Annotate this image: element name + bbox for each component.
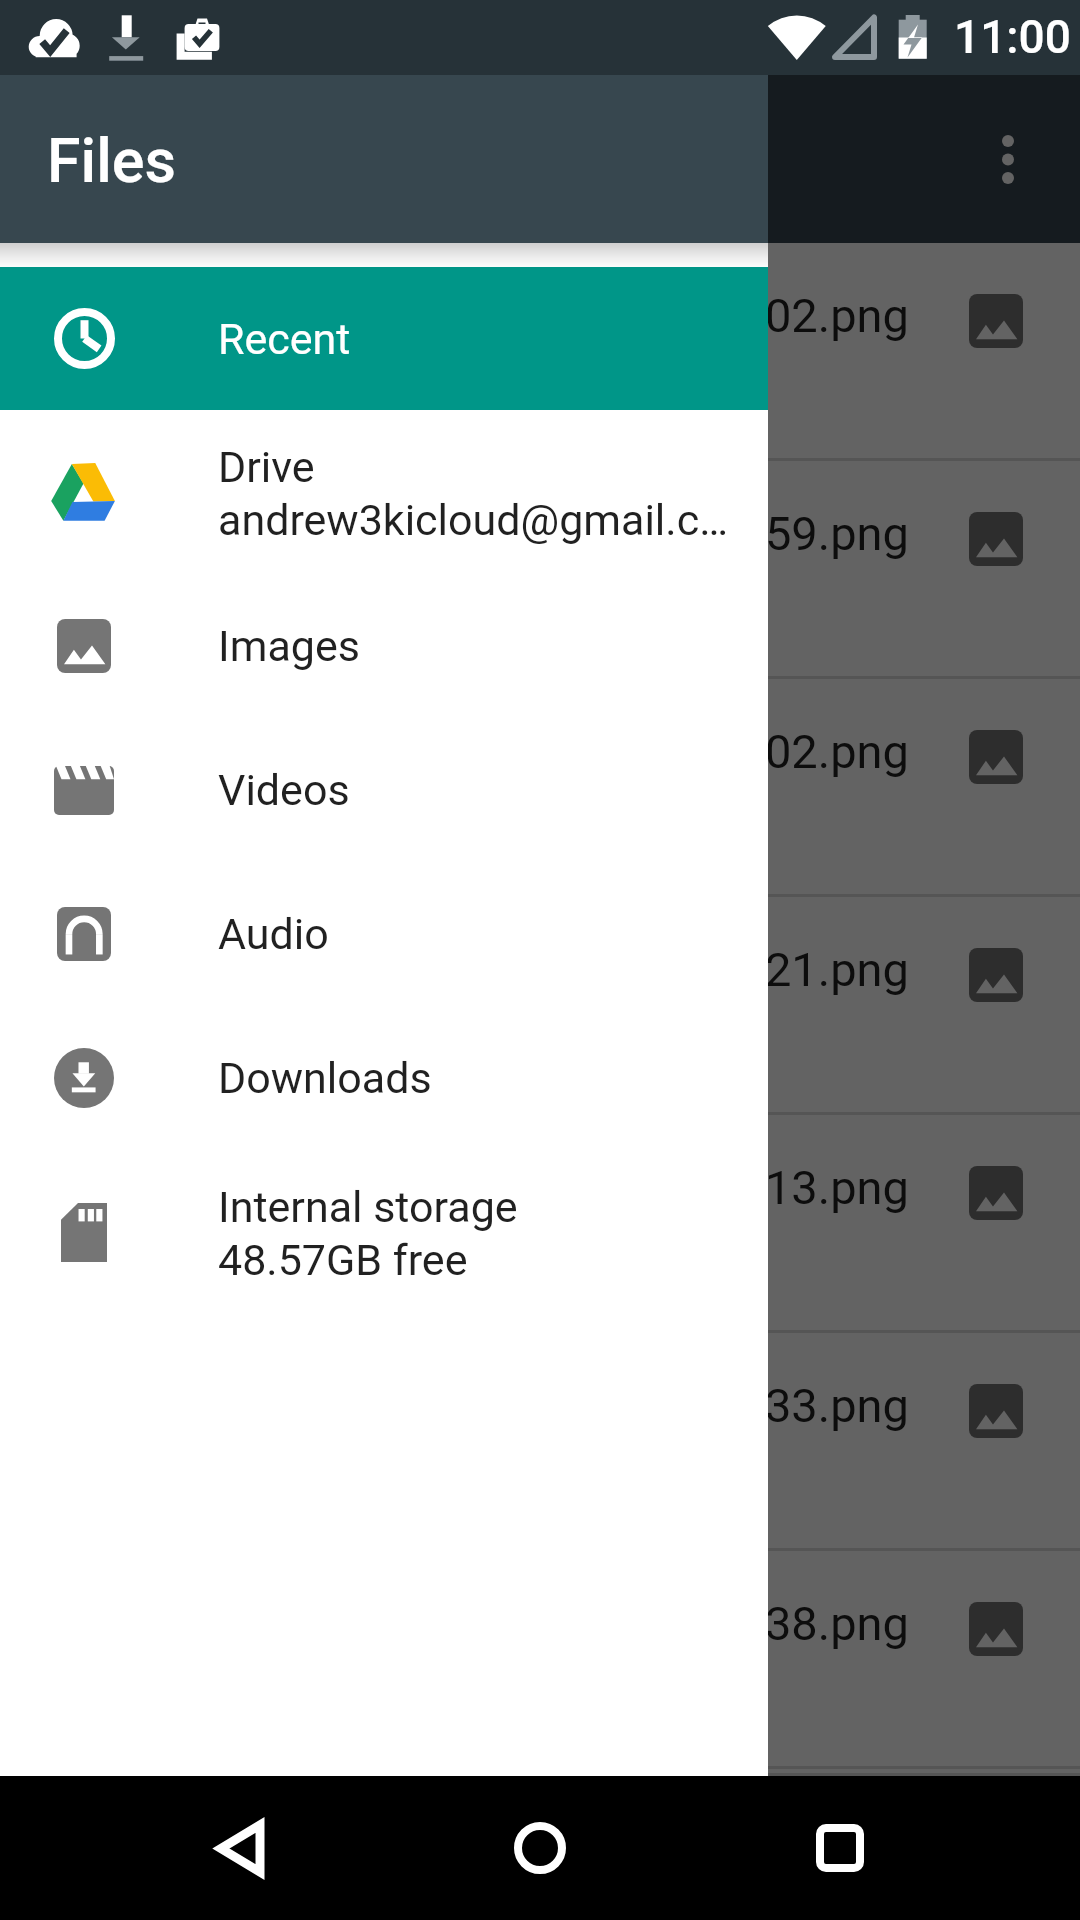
button[interactable]: Videos bbox=[0, 718, 768, 862]
button[interactable]: Screenshotsi_2016-05-01-10-54-38.png bbox=[0, 1551, 1080, 1769]
staticText: Internal storage bbox=[218, 1182, 518, 1232]
staticText: Screenshotsi_2016-05-01-10-55-33.png bbox=[90, 1378, 969, 1433]
button[interactable]: Screenshotsi_2016-05-01-10-58-02.png bbox=[0, 679, 1080, 897]
button[interactable]: Audio bbox=[0, 862, 768, 1006]
staticText: Screenshotsi_2016-05-01-10-54-38.png bbox=[90, 1596, 969, 1651]
button[interactable]: Home bbox=[480, 1788, 600, 1908]
staticText: Downloads bbox=[218, 1053, 432, 1103]
button[interactable]: Drive bbox=[0, 410, 768, 574]
staticText: Recent bbox=[218, 314, 351, 364]
staticText: Drive bbox=[218, 442, 315, 492]
staticText: Screenshotsi_2016-05-01-10-58-02.png bbox=[90, 724, 969, 779]
staticText: Files bbox=[47, 125, 176, 196]
staticText: Screenshotsi_2016-05-01-10-57-21.png bbox=[90, 942, 969, 997]
staticText: 48.57GB free bbox=[218, 1235, 468, 1285]
staticText: andrew3kicloud@gmail.c… bbox=[218, 495, 728, 545]
button[interactable]: Recent bbox=[0, 267, 768, 410]
button[interactable]: Screenshotsi_2016-05-01-10-57-21.png bbox=[0, 897, 1080, 1115]
staticText: Audio bbox=[218, 909, 329, 959]
button[interactable]: Images bbox=[0, 574, 768, 718]
staticText: 11:00 bbox=[954, 10, 1071, 64]
button[interactable]: Screenshotsi_2016-05-01-10-56-13.png bbox=[0, 1115, 1080, 1333]
button[interactable]: Screenshotsi_2016-05-01-11-00-02.png bbox=[0, 243, 1080, 461]
button[interactable]: More options bbox=[936, 75, 1080, 243]
staticText: Files bbox=[47, 125, 176, 196]
button[interactable]: Downloads bbox=[0, 1006, 768, 1150]
button[interactable]: Screenshotsi_2016-05-01-10-53-11.png bbox=[0, 1769, 1080, 1776]
staticText: Screenshotsi_2016-05-01-10-56-13.png bbox=[90, 1160, 969, 1215]
staticText: Videos bbox=[218, 765, 350, 815]
staticText: Images bbox=[218, 621, 360, 671]
staticText: Screenshotsi_2016-05-01-11-00-02.png bbox=[90, 288, 969, 343]
button[interactable]: Screenshotsi_2016-05-01-10-55-33.png bbox=[0, 1333, 1080, 1551]
button[interactable]: Internal storage bbox=[0, 1150, 768, 1314]
button[interactable]: Back bbox=[180, 1788, 300, 1908]
button[interactable]: Screenshotsi_2016-05-01-10-59-59.png bbox=[0, 461, 1080, 679]
button[interactable]: Recent apps bbox=[780, 1788, 900, 1908]
staticText: Screenshotsi_2016-05-01-10-59-59.png bbox=[90, 506, 969, 561]
